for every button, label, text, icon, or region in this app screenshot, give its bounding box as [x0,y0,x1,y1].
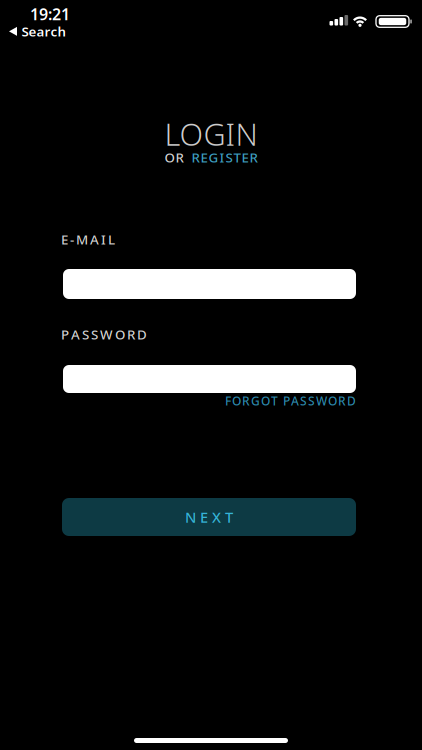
button[interactable]: E-mail text field [63,269,356,299]
staticText: Search [21,22,66,40]
staticText: LOGIN [164,113,257,154]
staticText: R E G I S T E R [191,148,257,166]
button[interactable]: F O R G O T P A S S W O R D [225,393,356,409]
staticText: 19:21 [30,3,70,25]
button[interactable]: R E G I S T E R [191,148,257,166]
staticText: P A S S W O R D [61,325,147,343]
staticText: F O R G O T P A S S W O R D [225,393,356,409]
staticText: E - M A I L [61,230,115,248]
button[interactable]: N E X T [62,498,356,536]
staticText: O R [164,148,183,166]
button[interactable]: Password text field [63,365,356,393]
staticText: N E X T [185,507,233,527]
button[interactable]: Back to Search [0,0,57,18]
